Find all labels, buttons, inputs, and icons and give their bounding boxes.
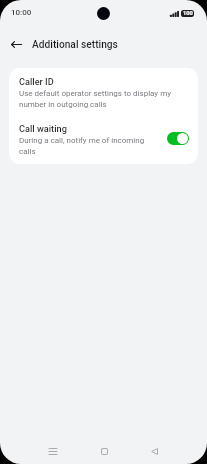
button[interactable]: Caller ID (9, 69, 198, 116)
button[interactable]: Recent apps (37, 438, 68, 464)
staticText: During a call, notify me of incoming cal… (19, 136, 161, 156)
button[interactable]: Home (89, 438, 120, 464)
staticText: Additional settings (32, 39, 118, 51)
button[interactable]: Call waiting toggle (167, 132, 189, 145)
staticText: 10:00 (11, 8, 32, 17)
button[interactable]: Back (4, 32, 28, 56)
staticText: Use default operator settings to display… (19, 89, 189, 109)
button[interactable]: Call waiting (9, 116, 198, 163)
staticText: Call waiting (19, 123, 67, 134)
button[interactable]: Back (139, 438, 170, 464)
staticText: 100 (183, 10, 193, 17)
staticText: Caller ID (19, 76, 54, 87)
